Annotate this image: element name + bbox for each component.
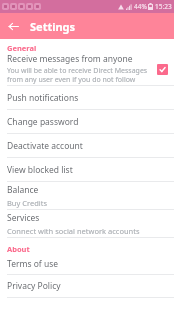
button[interactable]: Deactivate account [0,134,174,157]
staticText: View blocked list [7,164,73,176]
staticText: Settings [30,19,76,34]
button[interactable]: Balance [0,182,174,209]
staticText: Connect with social network accounts [7,226,140,236]
staticText: Change password [7,116,79,128]
staticText: 15:23 [155,2,172,11]
staticText: General [7,43,37,53]
button[interactable]: Services [0,210,174,237]
button[interactable]: View blocked list [0,158,174,181]
staticText: 44% [134,2,147,11]
staticText: Buy Credits [7,198,48,208]
staticText: About [7,244,30,254]
button[interactable]: Privacy Policy [0,275,174,297]
staticText: Privacy Policy [7,280,61,292]
button[interactable]: Back [4,17,22,35]
staticText: Balance [7,184,39,196]
staticText: Services [7,212,40,224]
button[interactable]: Receive messages toggle [157,64,168,75]
button[interactable]: Receive messages from anyone [0,53,174,85]
button[interactable]: Push notifications [0,86,174,109]
staticText: Deactivate account [7,140,83,152]
staticText: Terms of use [7,258,59,270]
button[interactable]: Terms of use [0,254,174,274]
button[interactable]: Change password [0,110,174,133]
staticText: Receive messages from anyone [7,53,133,65]
staticText: Push notifications [7,92,79,104]
staticText: You will be able to receive Direct Messa… [7,66,153,85]
